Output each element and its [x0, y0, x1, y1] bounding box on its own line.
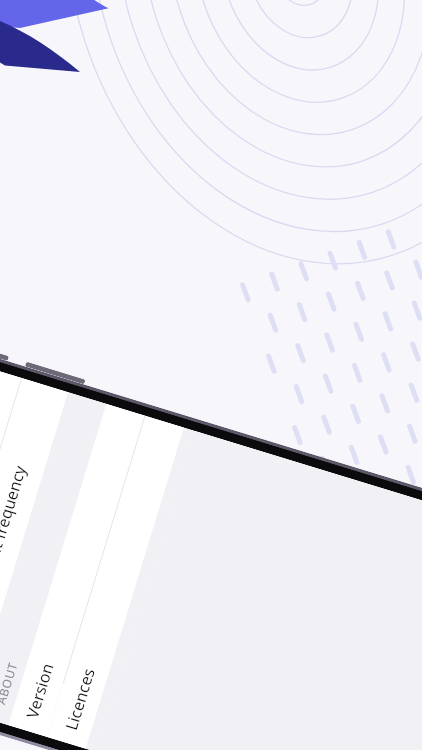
staticText: Licences [60, 665, 100, 733]
staticText: Announcement frequency [0, 462, 31, 656]
button[interactable]: Licences [47, 416, 184, 749]
staticText: Version [21, 660, 59, 721]
button[interactable]: Announcement frequency [0, 378, 68, 713]
staticText: ABOUT [0, 659, 21, 706]
button[interactable]: Version [8, 404, 145, 737]
button[interactable]: Audio announcement [0, 364, 21, 699]
